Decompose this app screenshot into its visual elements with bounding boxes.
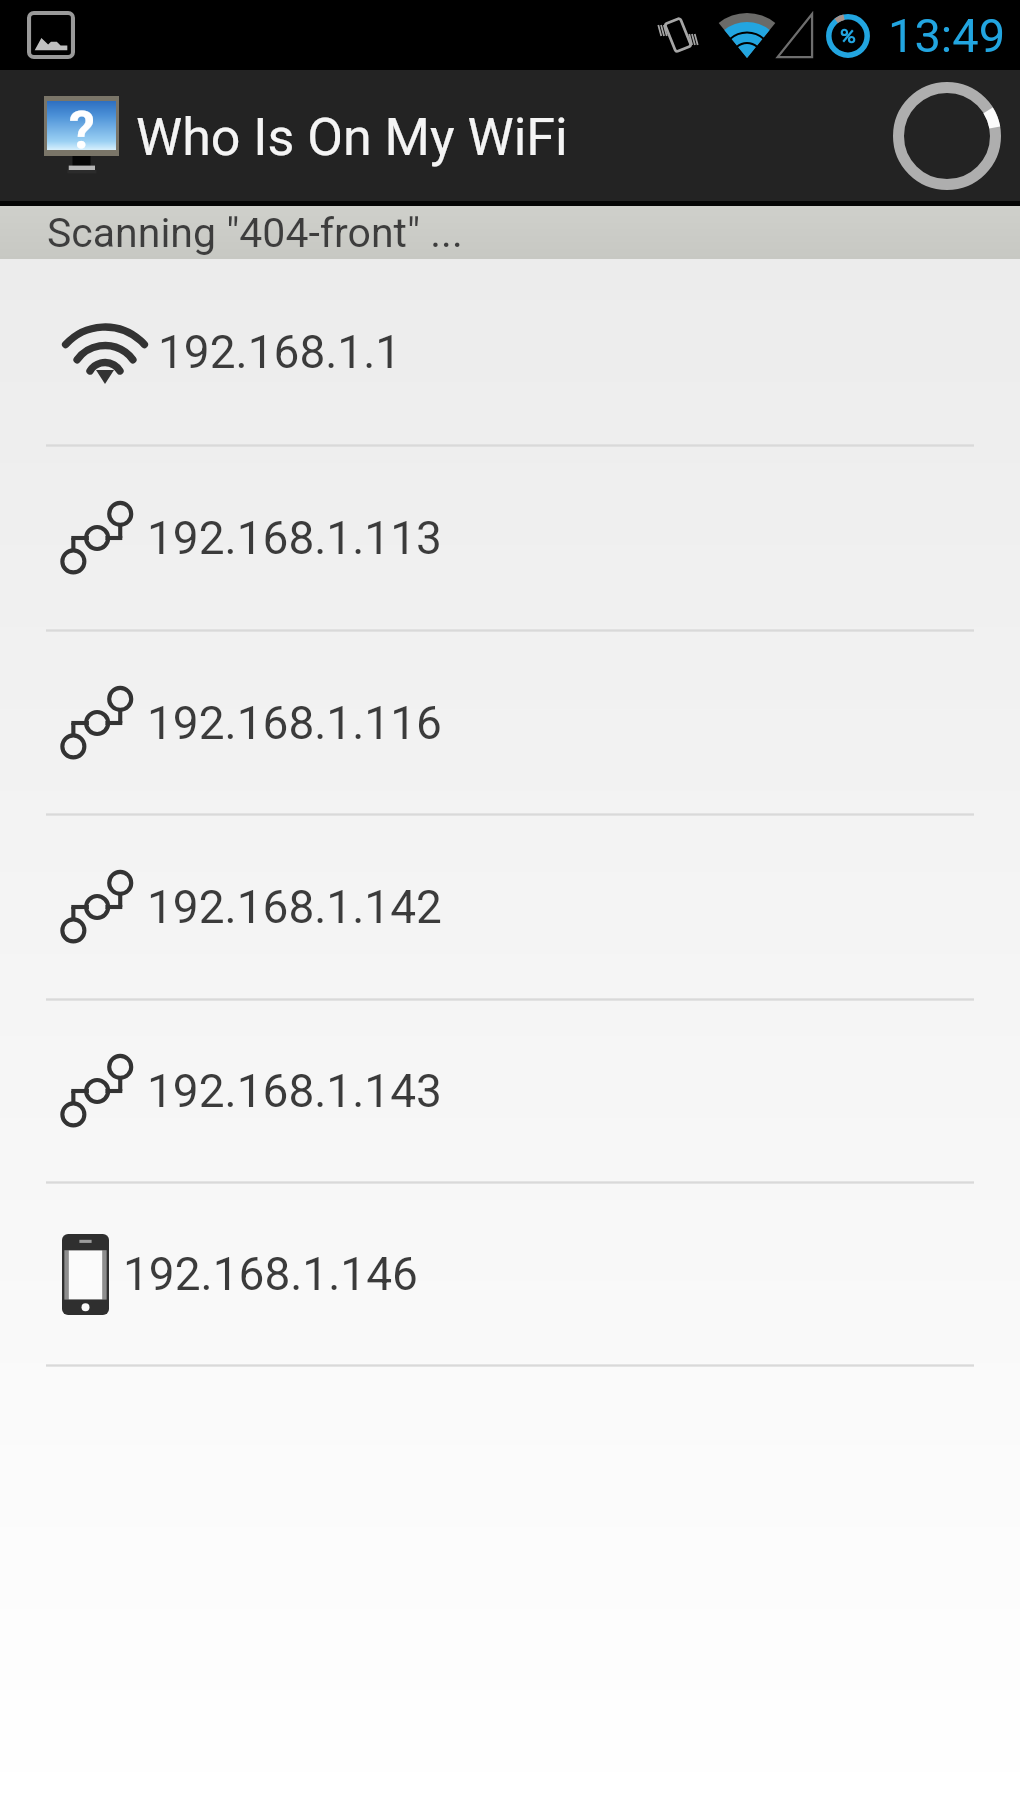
button[interactable]: Scanning progress [887,76,1007,196]
staticText: 192.168.1.143 [147,1064,442,1118]
staticText: ? [69,100,95,149]
button[interactable]: 192.168.1.146 [0,1184,1020,1364]
staticText: 192.168.1.113 [147,511,442,565]
button[interactable]: 192.168.1.1 [0,259,1020,444]
button[interactable]: 192.168.1.116 [0,632,1020,813]
button[interactable]: 192.168.1.113 [0,447,1020,629]
staticText: Who Is On My WiFi [136,107,568,168]
staticText: 13:49 [888,8,1006,63]
button[interactable]: 192.168.1.143 [0,1001,1020,1181]
staticText: 192.168.1.1 [158,325,402,379]
staticText: 192.168.1.142 [147,880,442,934]
staticText: Scanning "404-front" ... [47,209,463,257]
staticText: 192.168.1.146 [123,1247,418,1301]
button[interactable]: 192.168.1.142 [0,816,1020,998]
staticText: 192.168.1.116 [147,696,442,750]
